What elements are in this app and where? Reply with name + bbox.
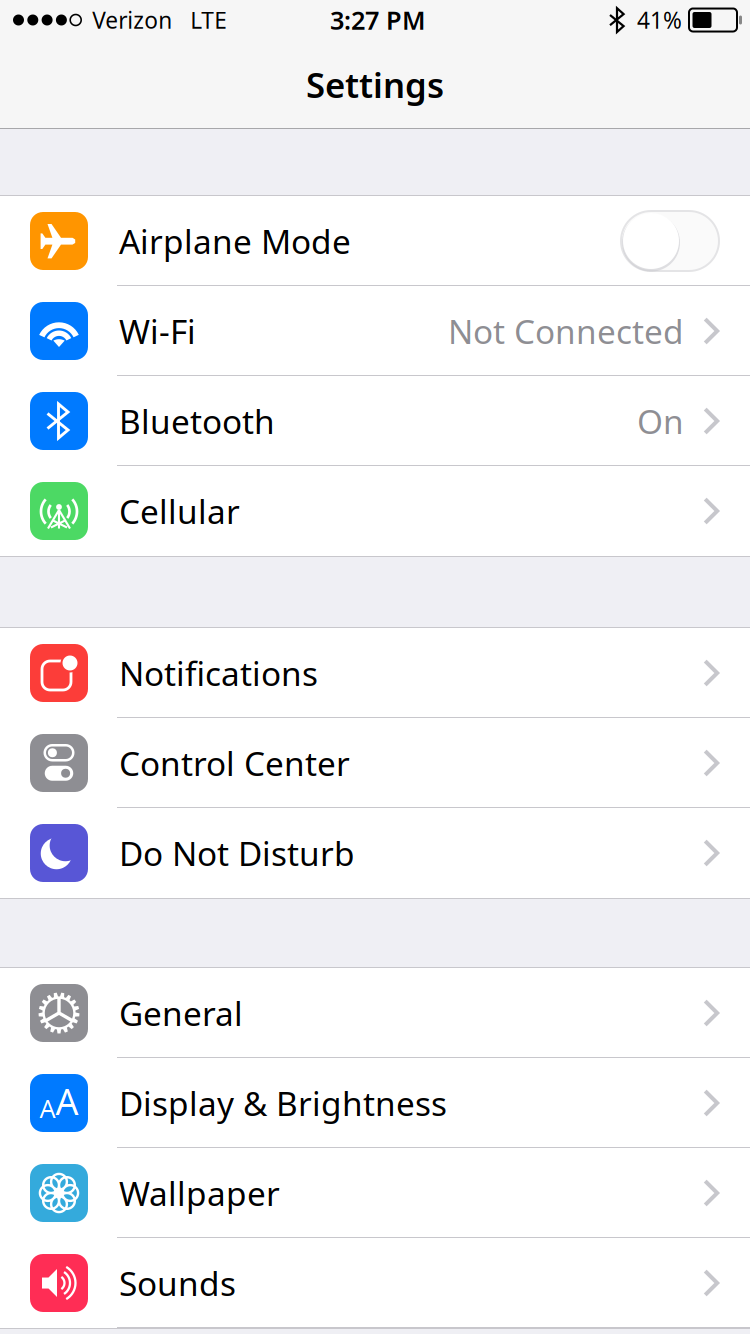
staticText: A — [39, 1091, 55, 1125]
staticText: Bluetooth — [119, 399, 275, 443]
staticText: Settings — [306, 61, 444, 107]
staticText: Control Center — [119, 741, 350, 785]
staticText: Not Connected — [448, 309, 684, 353]
button[interactable]: General — [0, 968, 750, 1058]
button[interactable]: Wi-Fi — [0, 286, 750, 376]
staticText: Wallpaper — [119, 1171, 280, 1215]
button[interactable]: Notifications — [0, 628, 750, 718]
staticText: Cellular — [119, 489, 240, 533]
staticText: Display & Brightness — [119, 1081, 447, 1125]
staticText: On — [637, 399, 684, 443]
button[interactable]: Do Not Disturb — [0, 808, 750, 898]
staticText: LTE — [190, 5, 227, 35]
staticText: A — [55, 1077, 78, 1125]
button[interactable]: Control Center — [0, 718, 750, 808]
staticText: 3:27 PM — [330, 3, 426, 37]
button[interactable]: Bluetooth — [0, 376, 750, 466]
button[interactable]: Sounds — [0, 1238, 750, 1328]
button[interactable]: Wallpaper — [0, 1148, 750, 1238]
button[interactable]: Airplane Mode — [0, 196, 750, 286]
staticText: Airplane Mode — [119, 219, 351, 263]
staticText: Do Not Disturb — [119, 831, 355, 875]
button[interactable]: Cellular — [0, 466, 750, 556]
staticText: Verizon — [92, 5, 172, 35]
staticText: General — [119, 991, 243, 1035]
staticText: Wi-Fi — [119, 309, 196, 353]
staticText: Sounds — [119, 1261, 236, 1305]
staticText: Notifications — [119, 651, 318, 695]
button[interactable]: A — [0, 1058, 750, 1148]
staticText: 41% — [637, 5, 682, 35]
